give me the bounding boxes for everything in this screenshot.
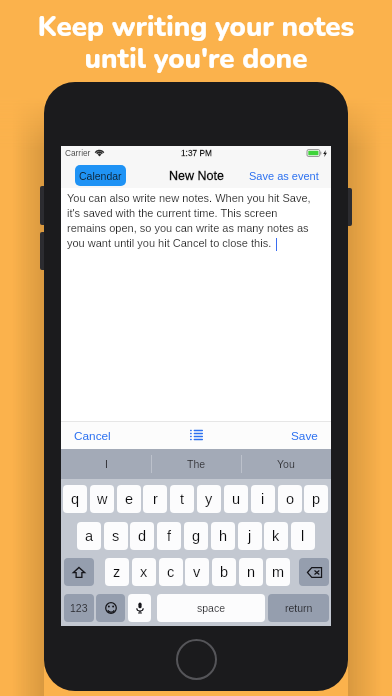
staticText: x xyxy=(140,564,148,580)
button[interactable]: Save xyxy=(281,424,331,447)
button[interactable]: x xyxy=(132,558,156,586)
button[interactable]: o xyxy=(278,485,302,513)
button[interactable]: n xyxy=(239,558,263,586)
button[interactable]: e xyxy=(117,485,141,513)
staticText: p xyxy=(312,491,321,507)
staticText: e xyxy=(125,491,134,507)
staticText: Calendar xyxy=(79,170,122,182)
staticText: c xyxy=(167,564,175,580)
button[interactable]: d xyxy=(130,522,154,550)
staticText: You xyxy=(277,458,295,470)
button[interactable]: t xyxy=(170,485,194,513)
button[interactable]: The xyxy=(151,449,241,479)
button[interactable]: Bullet list xyxy=(185,424,208,446)
button[interactable]: p xyxy=(304,485,328,513)
button[interactable]: i xyxy=(251,485,275,513)
staticText: l xyxy=(301,528,305,544)
button[interactable]: I xyxy=(61,449,151,479)
button[interactable]: space xyxy=(157,594,265,622)
staticText: You can also write new notes. When you h… xyxy=(67,192,317,249)
staticText: Cancel xyxy=(74,429,111,442)
staticText: j xyxy=(248,528,252,544)
button[interactable]: Backspace xyxy=(299,558,329,586)
staticText: Save xyxy=(291,429,318,442)
staticText: d xyxy=(138,528,147,544)
button[interactable]: z xyxy=(105,558,129,586)
staticText: z xyxy=(113,564,121,580)
staticText: u xyxy=(232,491,241,507)
button[interactable]: return xyxy=(268,594,329,622)
staticText: Keep writing your notes until you're don… xyxy=(0,8,392,77)
staticText: w xyxy=(97,491,108,507)
staticText: o xyxy=(286,491,295,507)
button[interactable]: c xyxy=(159,558,183,586)
staticText: 123 xyxy=(70,602,88,614)
button[interactable]: a xyxy=(77,522,101,550)
staticText: m xyxy=(272,564,285,580)
button[interactable]: Dictate xyxy=(128,594,151,622)
button[interactable]: h xyxy=(211,522,235,550)
button[interactable]: k xyxy=(264,522,288,550)
button[interactable]: v xyxy=(185,558,209,586)
button[interactable]: Cancel xyxy=(61,424,121,447)
staticText: 1:37 PM xyxy=(181,148,212,157)
button[interactable]: b xyxy=(212,558,236,586)
staticText: The xyxy=(187,458,206,470)
staticText: I xyxy=(105,458,108,470)
staticText: y xyxy=(205,491,213,507)
button[interactable]: s xyxy=(104,522,128,550)
button[interactable]: w xyxy=(90,485,114,513)
button[interactable]: y xyxy=(197,485,221,513)
staticText: k xyxy=(272,528,280,544)
staticText: v xyxy=(193,564,201,580)
button[interactable]: You xyxy=(241,449,331,479)
button[interactable]: Save as event xyxy=(241,166,331,186)
button[interactable]: u xyxy=(224,485,248,513)
staticText: h xyxy=(219,528,228,544)
staticText: return xyxy=(285,602,313,614)
staticText: s xyxy=(112,528,120,544)
button[interactable]: g xyxy=(184,522,208,550)
button[interactable]: f xyxy=(157,522,181,550)
staticText: r xyxy=(153,491,158,507)
button[interactable]: q xyxy=(63,485,87,513)
staticText: t xyxy=(180,491,185,507)
staticText: i xyxy=(261,491,265,507)
staticText: a xyxy=(85,528,94,544)
staticText: g xyxy=(192,528,201,544)
staticText: Carrier xyxy=(65,148,91,157)
button[interactable]: Shift xyxy=(64,558,94,586)
button[interactable]: m xyxy=(266,558,290,586)
staticText: n xyxy=(247,564,256,580)
staticText: b xyxy=(220,564,229,580)
staticText: q xyxy=(71,491,80,507)
staticText: New Note xyxy=(169,169,224,183)
staticText: space xyxy=(197,602,226,614)
staticText: Save as event xyxy=(249,170,319,182)
button[interactable]: Emoji xyxy=(96,594,125,622)
button[interactable]: r xyxy=(143,485,167,513)
button[interactable]: 123 xyxy=(64,594,94,622)
button[interactable]: j xyxy=(238,522,262,550)
button[interactable]: Calendar xyxy=(75,165,126,186)
staticText: f xyxy=(167,528,172,544)
button[interactable]: l xyxy=(291,522,315,550)
